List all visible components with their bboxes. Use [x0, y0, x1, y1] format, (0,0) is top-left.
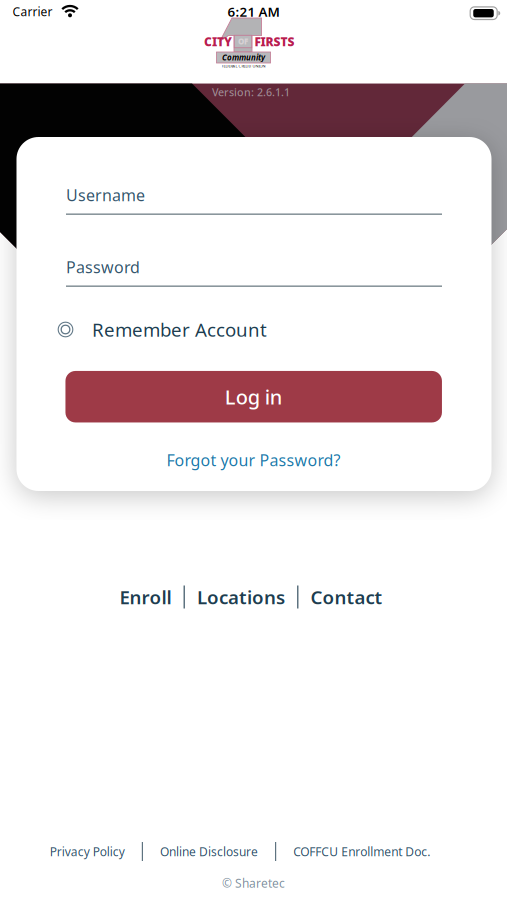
- button[interactable]: Privacy Policy: [50, 843, 125, 859]
- staticText: Community: [222, 52, 265, 63]
- staticText: Carrier: [12, 3, 52, 19]
- button[interactable]: Remember Account: [58, 317, 450, 342]
- staticText: Enroll: [119, 585, 171, 609]
- staticText: Username: [66, 184, 145, 206]
- staticText: © Sharetec: [222, 875, 285, 891]
- staticText: Locations: [197, 585, 285, 609]
- staticText: COFFCU Enrollment Doc.: [293, 843, 430, 859]
- staticText: 6:21 AM: [227, 3, 279, 20]
- staticText: Version: 2.6.1.1: [212, 85, 290, 99]
- button[interactable]: Forgot your Password?: [166, 449, 340, 471]
- staticText: FEDERAL CREDIT UNION: [221, 63, 265, 69]
- button[interactable]: Log in: [65, 371, 442, 422]
- staticText: OF: [238, 36, 248, 47]
- button[interactable]: Username: [66, 185, 442, 213]
- button[interactable]: Online Disclosure: [160, 843, 258, 859]
- button[interactable]: Enroll: [119, 585, 171, 609]
- staticText: Contact: [310, 585, 382, 609]
- staticText: Log in: [225, 383, 283, 410]
- button[interactable]: Locations: [197, 585, 285, 609]
- staticText: CITY: [204, 33, 232, 49]
- staticText: Privacy Policy: [50, 843, 125, 859]
- staticText: Password: [66, 256, 140, 278]
- staticText: Remember Account: [92, 317, 267, 342]
- staticText: Forgot your Password?: [166, 449, 340, 471]
- staticText: Online Disclosure: [160, 843, 258, 859]
- button[interactable]: Password: [66, 257, 442, 285]
- button[interactable]: Contact: [310, 585, 382, 609]
- staticText: FIRSTS: [254, 33, 294, 49]
- button[interactable]: COFFCU Enrollment Doc.: [293, 843, 430, 859]
